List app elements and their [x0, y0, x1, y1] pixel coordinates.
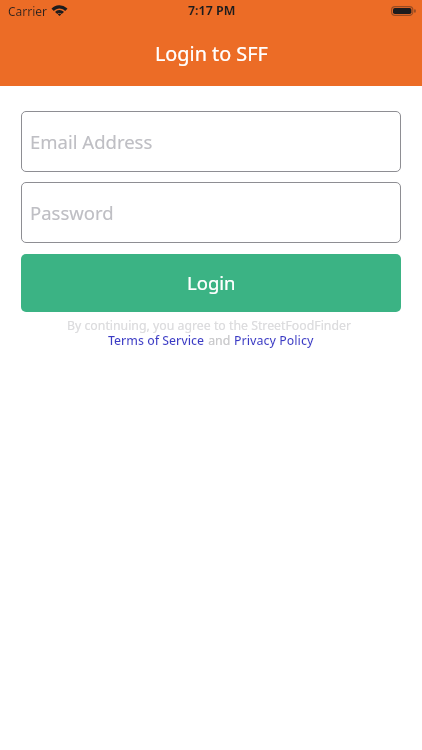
staticText: Email Address: [30, 129, 153, 154]
button[interactable]: Email Address: [21, 111, 401, 172]
staticText: Login to SFF: [155, 40, 268, 67]
staticText: Carrier: [8, 3, 48, 19]
staticText: By continuing, you agree to the StreetFo…: [0, 317, 420, 334]
button[interactable]: Login: [21, 254, 401, 312]
staticText: Password: [30, 200, 114, 225]
staticText: Login: [187, 270, 236, 295]
button[interactable]: Terms of Service: [108, 332, 205, 349]
button[interactable]: Privacy Policy: [234, 332, 314, 349]
button[interactable]: Password: [21, 182, 401, 243]
other: Wi-Fi: [52, 5, 67, 16]
staticText: and: [205, 332, 234, 349]
staticText: 7:17 PM: [188, 2, 236, 19]
other: Battery: [391, 6, 416, 16]
